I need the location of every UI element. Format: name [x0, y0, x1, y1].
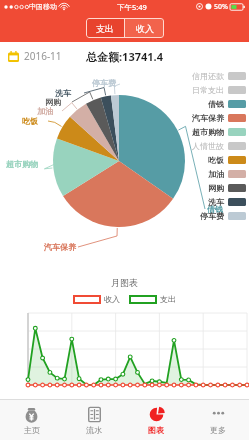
button[interactable]: 网购 — [208, 181, 246, 195]
staticText: 加油 — [208, 169, 224, 179]
staticText: 汽车保养 — [192, 113, 224, 123]
staticText: 停车费 — [200, 211, 224, 221]
button[interactable]: 收入 — [125, 18, 164, 38]
staticText: 主页 — [24, 425, 40, 435]
staticText: 人情世故 — [192, 141, 224, 151]
staticText: 超市购物 — [192, 127, 224, 137]
staticText: 收入 — [136, 23, 154, 34]
button[interactable]: 超市购物 — [192, 125, 246, 139]
staticText: 洗车 — [55, 88, 71, 98]
staticText: 超市购物 — [6, 159, 38, 169]
staticText: 中国移动 — [29, 2, 57, 11]
staticText: 停车费 — [92, 78, 116, 88]
staticText: 月图表 — [111, 277, 138, 288]
staticText: 50% — [214, 2, 228, 12]
button[interactable] — [129, 295, 157, 304]
staticText: 下午5:49 — [117, 2, 147, 12]
staticText: 加油 — [37, 106, 53, 116]
staticText: 总金额:13741.4 — [86, 49, 163, 64]
staticText: 借钱 — [208, 99, 224, 109]
staticText: 更多 — [210, 425, 226, 435]
staticText: 流水 — [86, 425, 102, 435]
button[interactable]: 人情世故 — [192, 139, 246, 153]
staticText: 收入 — [104, 294, 120, 304]
button[interactable]: 信用还款 — [192, 69, 246, 83]
staticText: 汽车保养 — [44, 242, 76, 252]
button[interactable]: 洗车 — [208, 195, 246, 209]
staticText: 借钱 — [207, 204, 223, 214]
button[interactable]: 日常支出 — [192, 83, 246, 97]
button[interactable]: 支出 — [86, 18, 124, 38]
button[interactable]: 主页 — [0, 400, 63, 440]
button[interactable]: 加油 — [208, 167, 246, 181]
button[interactable]: 流水 — [63, 400, 125, 440]
staticText: 日常支出 — [192, 85, 224, 95]
staticText: 支出 — [96, 23, 114, 34]
staticText: 吃饭 — [208, 155, 224, 165]
staticText: 网购 — [208, 183, 224, 193]
staticText: 吃饭 — [22, 116, 38, 126]
staticText: 信用还款 — [192, 71, 224, 81]
staticText: 2016-11 — [24, 49, 62, 63]
staticText: 图表 — [148, 425, 164, 435]
button[interactable]: 图表 — [125, 400, 187, 440]
button[interactable]: 吃饭 — [208, 153, 246, 167]
button[interactable]: 借钱 — [208, 97, 246, 111]
button[interactable]: 停车费 — [200, 209, 246, 223]
button[interactable] — [73, 295, 101, 304]
button[interactable]: 汽车保养 — [192, 111, 246, 125]
button[interactable]: 更多 — [187, 400, 249, 440]
button[interactable]: 2016-11 — [8, 43, 62, 69]
staticText: 洗车 — [208, 197, 224, 207]
staticText: 支出 — [160, 294, 176, 304]
staticText: 网购 — [45, 97, 61, 107]
